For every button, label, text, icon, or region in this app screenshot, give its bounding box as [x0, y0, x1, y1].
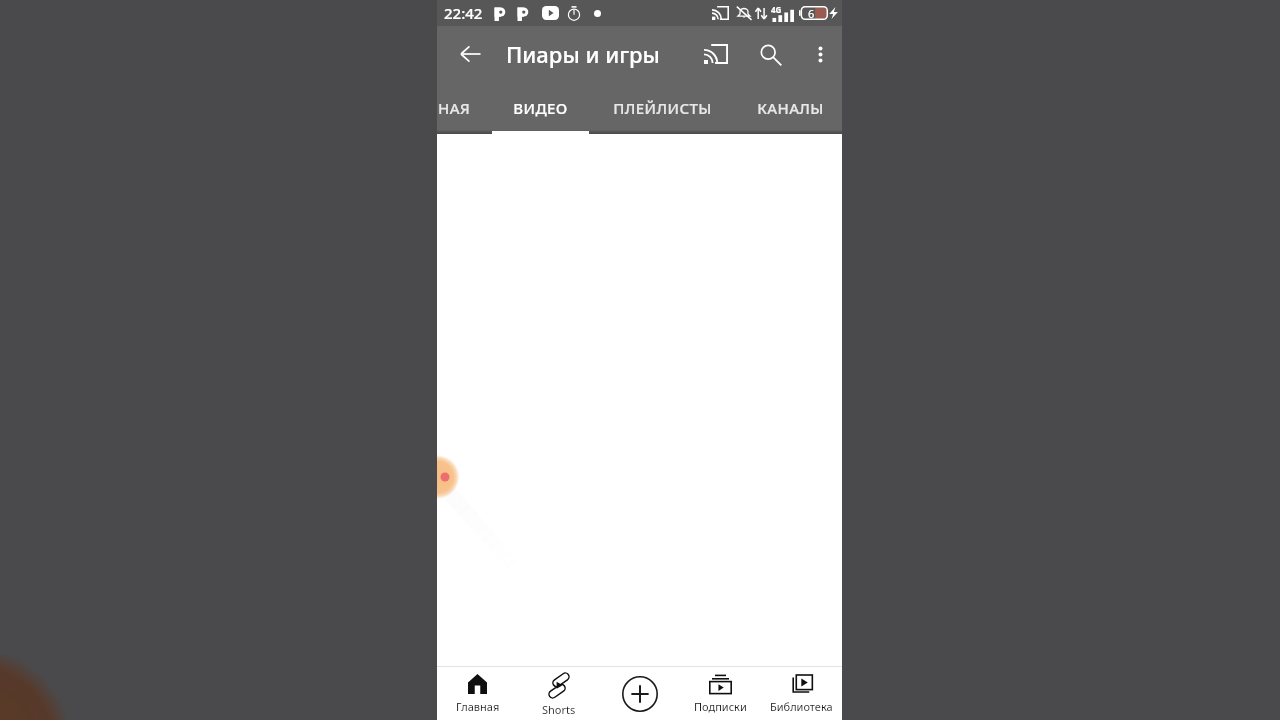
staticText: 22:42	[444, 3, 483, 23]
staticText: Главная	[456, 699, 500, 714]
staticText: ВИДЕО	[513, 98, 568, 118]
button[interactable]: НАЯ	[437, 82, 477, 134]
button[interactable]: Search	[746, 26, 794, 82]
staticText: Shorts	[542, 702, 576, 717]
staticText: НАЯ	[438, 98, 471, 118]
staticText: 4G	[771, 4, 782, 15]
staticText: Библиотека	[770, 699, 833, 714]
button[interactable]: Create	[599, 667, 680, 720]
button[interactable]: More options	[798, 26, 842, 82]
staticText: 6	[808, 6, 815, 21]
button[interactable]: КАНАЛЫ	[740, 82, 840, 134]
button[interactable]: Back	[437, 26, 493, 82]
button[interactable]: Shorts	[518, 667, 599, 720]
staticText: КАНАЛЫ	[757, 98, 824, 118]
button[interactable]: Cast	[692, 26, 740, 82]
button[interactable]: Библиотека	[761, 667, 842, 720]
button[interactable]: Подписки	[680, 667, 761, 720]
button[interactable]: ВИДЕО	[492, 82, 589, 134]
staticText: Подписки	[694, 699, 747, 714]
button[interactable]: ПЛЕЙЛИСТЫ	[601, 82, 723, 134]
staticText: Пиары и игры	[506, 39, 660, 69]
staticText: ПЛЕЙЛИСТЫ	[613, 98, 712, 118]
button[interactable]: Главная	[437, 667, 518, 720]
